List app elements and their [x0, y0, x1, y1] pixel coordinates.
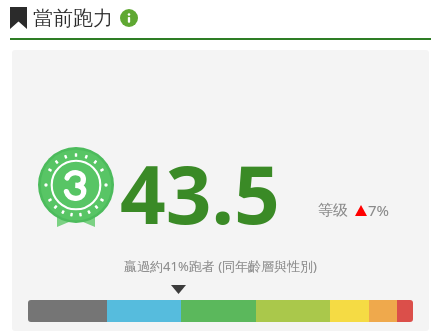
button[interactable]: Information	[120, 9, 138, 27]
staticText: 43.5	[120, 138, 280, 230]
button[interactable]	[28, 300, 413, 322]
staticText: 贏過約41%跑者 (同年齡層與性別)	[124, 257, 317, 275]
staticText: 等级	[318, 201, 348, 220]
staticText: 7%	[368, 200, 390, 220]
staticText: 當前跑力	[33, 6, 113, 31]
button[interactable]	[12, 50, 429, 331]
